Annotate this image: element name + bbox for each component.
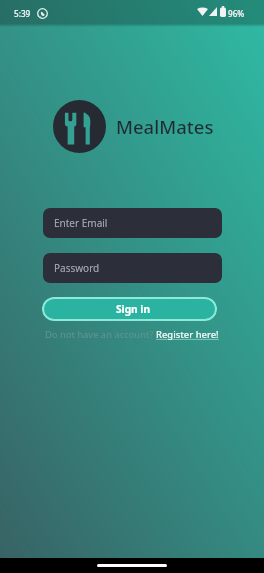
staticText: Enter Email [54, 216, 108, 230]
button[interactable]: Home [97, 564, 167, 567]
button[interactable]: Register here! [156, 328, 219, 341]
staticText: Password [54, 261, 100, 275]
staticText: 5:39 [14, 8, 31, 19]
staticText: MealMates [116, 114, 214, 139]
button[interactable]: Password [43, 253, 222, 283]
button[interactable]: Enter Email [43, 208, 222, 238]
staticText: 96% [228, 8, 245, 19]
button[interactable]: Sign in [42, 297, 217, 321]
staticText: Register here! [156, 328, 219, 341]
staticText: Sign in [116, 302, 151, 316]
staticText: Do not have an account? [45, 328, 154, 341]
